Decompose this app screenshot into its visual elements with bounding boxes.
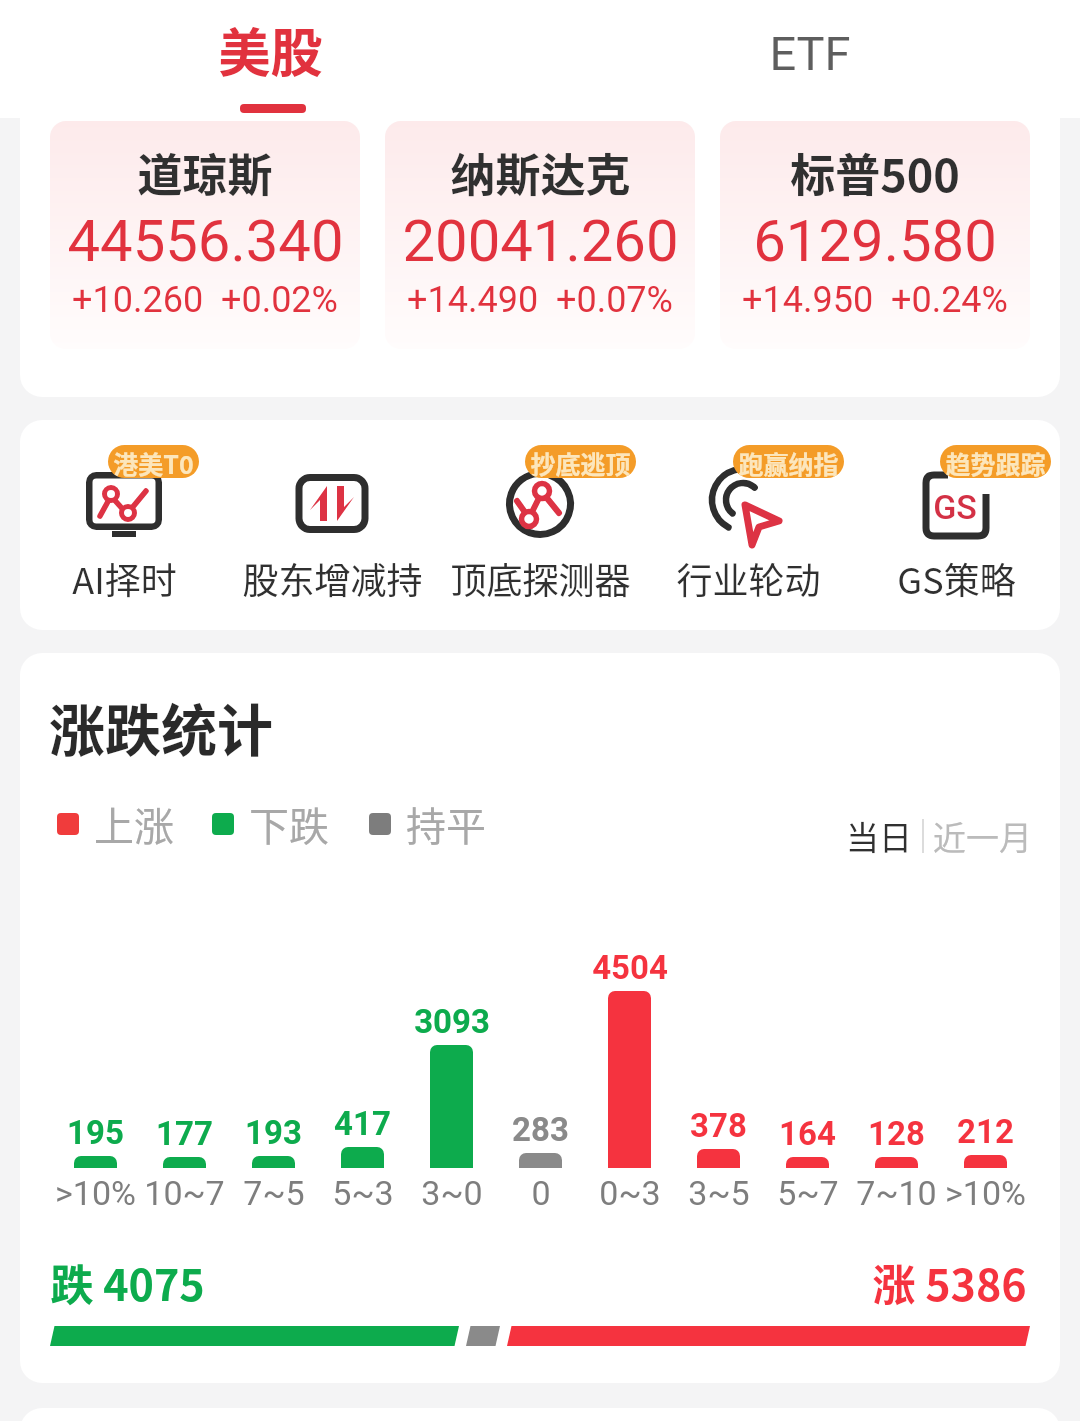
button[interactable]: AI择时 — [20, 420, 228, 630]
staticText: +10.260 +0.02% — [72, 279, 338, 321]
staticText: 道琼斯 — [137, 140, 273, 205]
staticText: 趋势跟踪 — [945, 445, 1046, 478]
button[interactable]: 股东增减持 — [228, 420, 436, 630]
staticText: 涨跌统计 — [49, 686, 273, 767]
button[interactable]: 上涨 — [57, 795, 174, 853]
button[interactable]: 纳斯达克 — [385, 121, 695, 349]
staticText: 193 — [245, 1113, 302, 1152]
button[interactable]: 近一月 — [933, 812, 1032, 860]
staticText: 3093 — [414, 1002, 490, 1041]
staticText: 44556.340 — [67, 207, 344, 275]
staticText: 378 — [690, 1106, 747, 1145]
staticText: >10% — [55, 1173, 136, 1213]
staticText: 128 — [868, 1114, 925, 1153]
button[interactable]: 顶底探测器 — [436, 420, 644, 630]
staticText: 跌 4075 — [50, 1251, 205, 1313]
button[interactable]: 美股 — [0, 0, 540, 118]
staticText: 持平 — [406, 795, 486, 853]
button[interactable]: 道琼斯 — [50, 121, 360, 349]
button[interactable]: GS策略 — [852, 420, 1060, 630]
staticText: 212 — [957, 1112, 1014, 1151]
staticText: 标普500 — [790, 140, 960, 205]
staticText: 7~10 — [856, 1173, 937, 1213]
staticText: 跑赢纳指 — [738, 445, 839, 478]
staticText: 行业轮动 — [676, 552, 821, 604]
staticText: 美股 — [218, 12, 323, 87]
staticText: 股东增减持 — [242, 552, 423, 604]
staticText: AI择时 — [72, 552, 177, 604]
staticText: 20041.260 — [402, 207, 679, 275]
staticText: GS — [933, 487, 977, 527]
staticText: 抄底逃顶 — [530, 445, 631, 478]
staticText: 195 — [67, 1113, 124, 1152]
staticText: 10~7 — [144, 1173, 225, 1213]
staticText: 417 — [334, 1104, 391, 1143]
staticText: +14.950 +0.24% — [742, 279, 1008, 321]
button[interactable]: 标普500 — [720, 121, 1030, 349]
button[interactable]: 行业轮动 — [644, 420, 852, 630]
staticText: 港美T0 — [113, 445, 194, 478]
staticText: 7~5 — [243, 1173, 305, 1213]
staticText: 下跌 — [249, 795, 329, 853]
staticText: 0~3 — [599, 1173, 661, 1213]
button[interactable]: ETF — [540, 0, 1080, 118]
button[interactable]: 当日 — [846, 812, 912, 860]
staticText: 5~7 — [777, 1173, 839, 1213]
staticText: 4504 — [592, 948, 668, 987]
staticText: 纳斯达克 — [450, 140, 631, 205]
staticText: 5~3 — [332, 1173, 394, 1213]
staticText: +14.490 +0.07% — [407, 279, 673, 321]
staticText: 涨 5386 — [872, 1251, 1027, 1313]
staticText: 顶底探测器 — [450, 552, 631, 604]
staticText: 164 — [779, 1114, 836, 1153]
staticText: 177 — [156, 1114, 213, 1153]
staticText: 3~5 — [688, 1173, 750, 1213]
staticText: 283 — [512, 1110, 569, 1149]
staticText: 6129.580 — [753, 207, 997, 275]
staticText: >10% — [945, 1173, 1026, 1213]
staticText: 上涨 — [94, 795, 174, 853]
staticText: 3~0 — [421, 1173, 483, 1213]
staticText: 0 — [531, 1173, 551, 1213]
button[interactable]: 下跌 — [212, 795, 329, 853]
staticText: GS策略 — [897, 552, 1016, 604]
staticText: 当日 — [846, 812, 912, 860]
staticText: 近一月 — [933, 812, 1032, 860]
staticText: ETF — [769, 26, 851, 81]
button[interactable]: 持平 — [369, 795, 486, 853]
